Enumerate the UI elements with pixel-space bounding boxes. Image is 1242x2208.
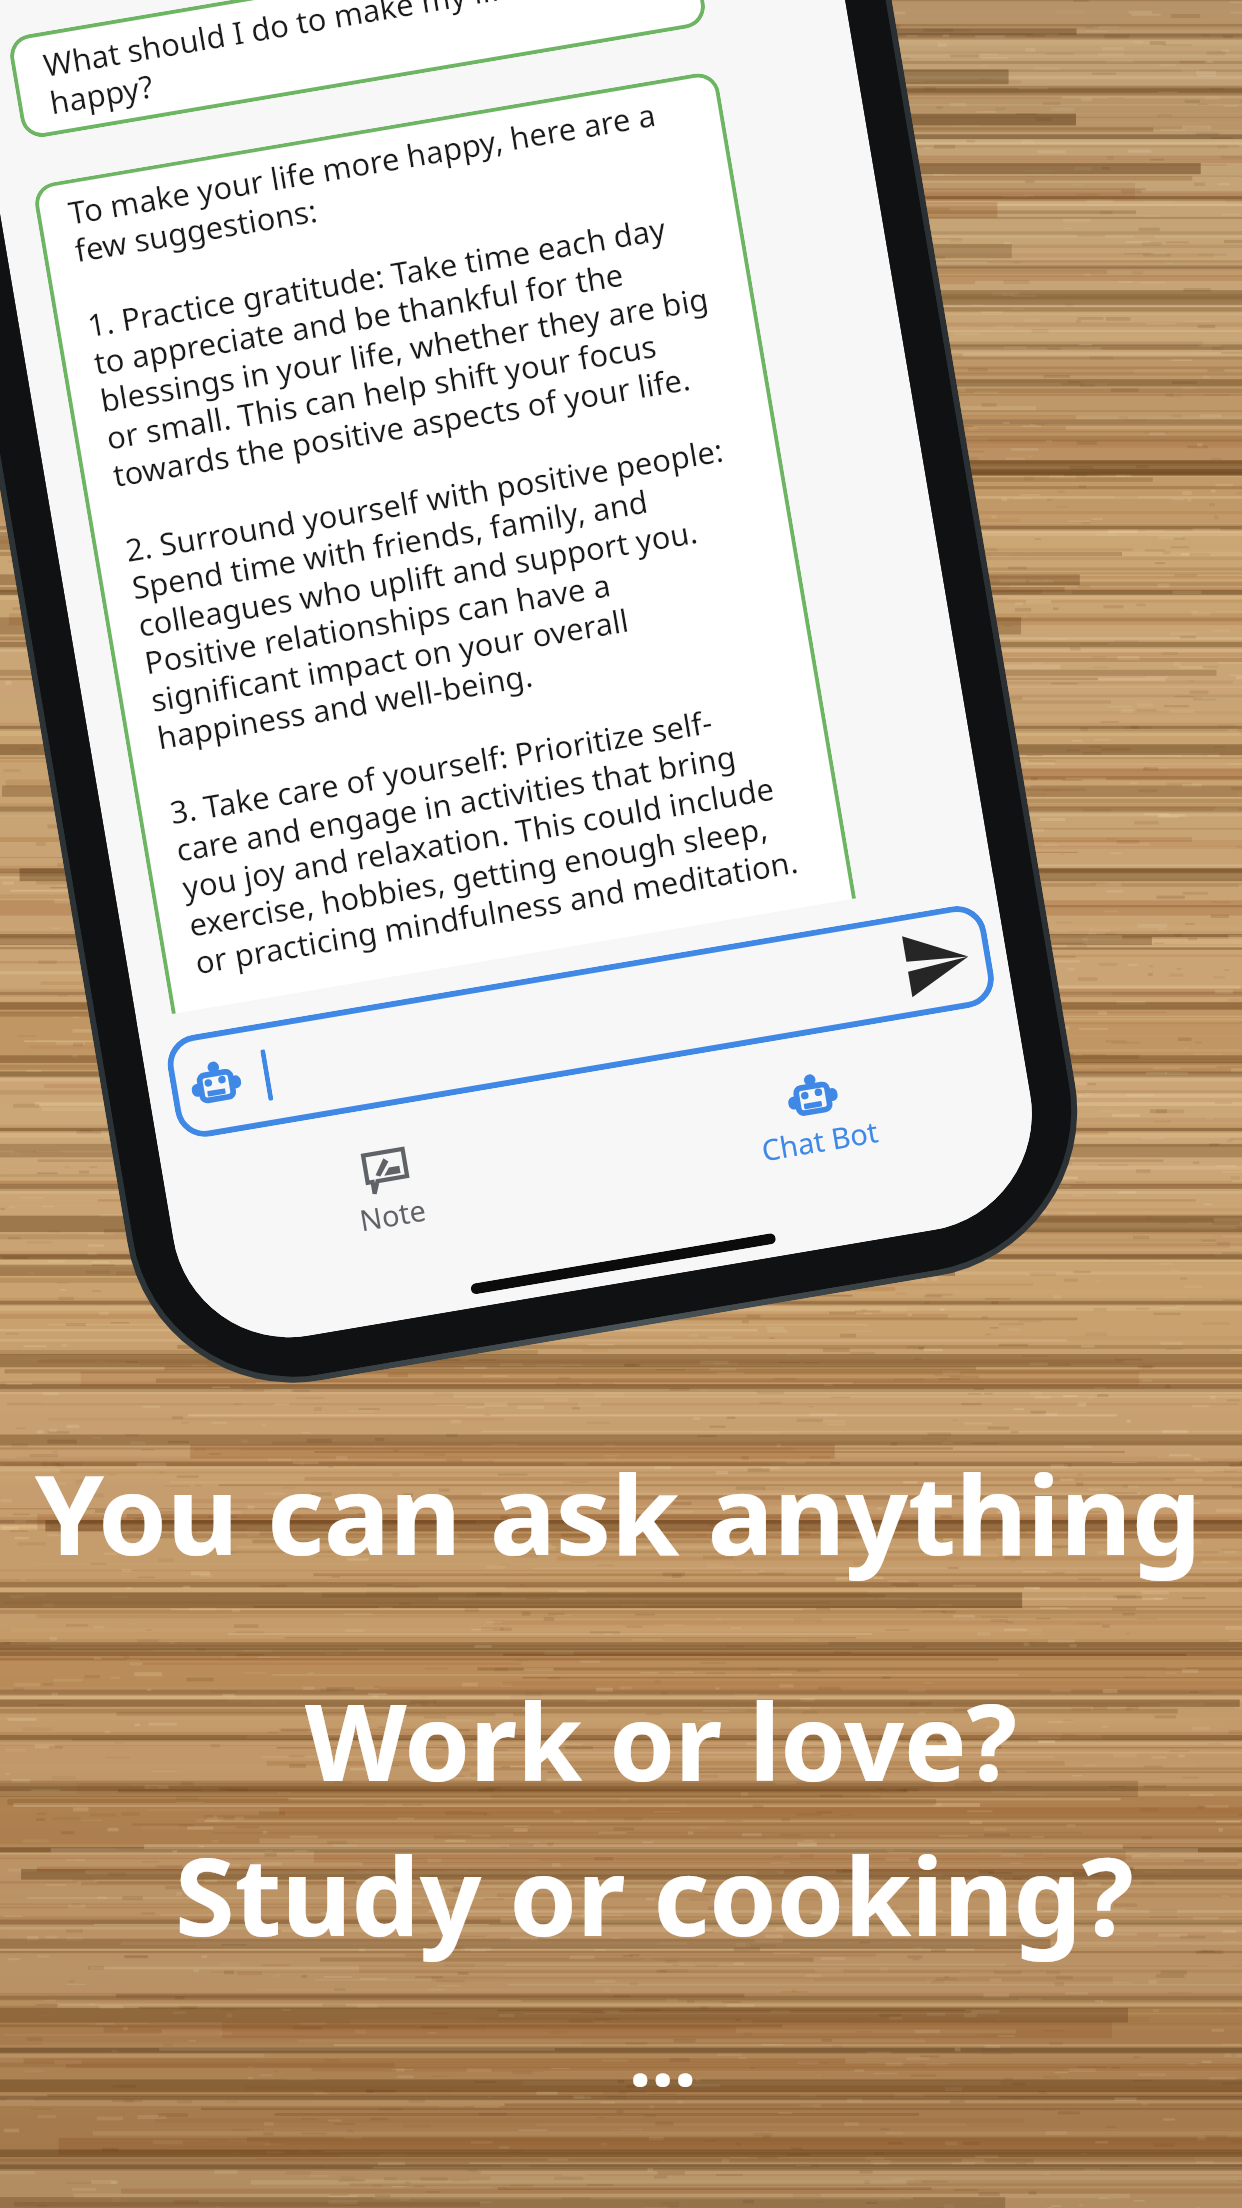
staticText: Study or cooking? — [175, 1821, 1134, 1968]
staticText: ... — [629, 2000, 697, 2109]
staticText: What should I do to make my life more ha… — [40, 0, 612, 123]
staticText: Work or love? — [305, 1669, 1017, 1812]
staticText: Note — [356, 1190, 429, 1239]
staticText: Chat Bot — [758, 1111, 881, 1169]
staticText: To make your life more happy, here are a… — [65, 90, 825, 1095]
button[interactable]: Note — [292, 1131, 491, 1287]
button[interactable]: Send — [895, 919, 980, 1004]
button[interactable]: Chat Bot — [720, 1057, 918, 1213]
button[interactable]: Message input — [163, 901, 999, 1141]
staticText: You can ask anything — [35, 1437, 1202, 1587]
